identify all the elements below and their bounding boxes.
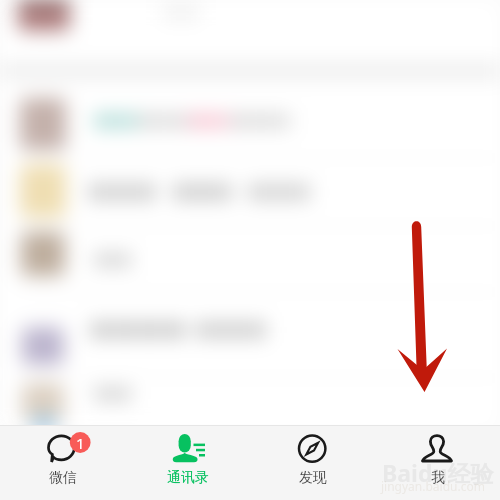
button[interactable]: 通讯录 <box>125 426 250 500</box>
button[interactable]: 我 <box>375 426 500 500</box>
staticText: 我 <box>431 469 445 487</box>
staticText: Baidu经验 <box>382 457 494 488</box>
staticText: 通讯录 <box>167 469 209 487</box>
button[interactable]: 1 <box>0 426 125 500</box>
staticText: 1 <box>76 433 85 453</box>
staticText: 发现 <box>299 469 327 487</box>
button[interactable]: 发现 <box>250 426 375 500</box>
staticText: 微信 <box>49 469 77 487</box>
staticText: jingyan.baidu.com <box>381 478 485 494</box>
